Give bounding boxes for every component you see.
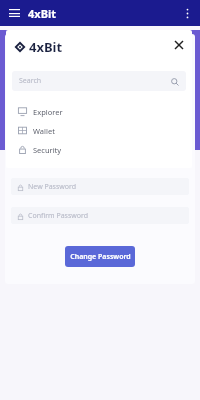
button[interactable]: Search <box>12 71 186 91</box>
staticText: Explorer <box>33 107 63 117</box>
button[interactable]: Change Password <box>65 246 135 267</box>
button[interactable]: Close <box>172 38 186 52</box>
staticText: Wallet <box>33 126 55 136</box>
staticText: New Password <box>28 182 77 192</box>
button[interactable]: Confirm Password <box>11 207 189 224</box>
button[interactable]: Wallet <box>6 121 192 140</box>
staticText: 4xBit <box>28 6 57 21</box>
button[interactable]: New Password <box>11 178 189 195</box>
staticText: Confirm Password <box>28 211 89 221</box>
staticText: Search <box>19 76 42 86</box>
button[interactable]: Open navigation menu <box>6 5 22 21</box>
staticText: Security <box>33 145 62 155</box>
staticText: Change Password <box>70 252 131 262</box>
button[interactable]: Explorer <box>6 102 192 121</box>
button[interactable]: Security <box>6 140 192 159</box>
staticText: 4xBit <box>29 38 63 56</box>
button[interactable]: More options <box>179 5 195 21</box>
